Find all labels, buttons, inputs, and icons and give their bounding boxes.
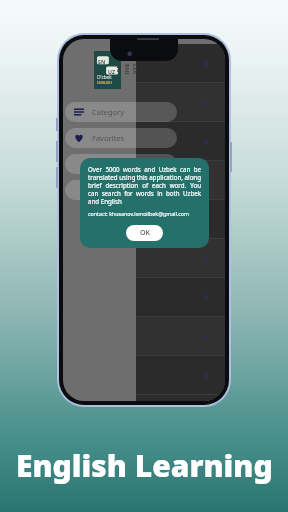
button[interactable] xyxy=(65,154,177,174)
other: Open word xyxy=(202,372,209,379)
other: Favorites xyxy=(74,133,84,143)
button[interactable]: Open word xyxy=(136,161,225,199)
staticText: Over 5000 words and Uzbek can be transla… xyxy=(88,165,201,205)
button[interactable]: Open word xyxy=(136,200,225,238)
button[interactable]: Open word xyxy=(136,239,225,277)
other: Open word xyxy=(202,333,209,340)
button[interactable] xyxy=(65,180,177,200)
button[interactable]: Open word xyxy=(136,122,225,160)
button[interactable]: Open word xyxy=(136,356,225,394)
other: Open word xyxy=(202,60,209,67)
other: Open word xyxy=(202,294,209,301)
other: Open word xyxy=(202,255,209,262)
staticText: LEARNING xyxy=(115,64,139,76)
other: Category xyxy=(74,107,84,117)
button[interactable]: Category xyxy=(65,102,177,122)
staticText: contact: khusanov.ismoilbek@gmail.com xyxy=(88,210,189,217)
button[interactable]: Open word xyxy=(136,44,225,82)
staticText: EN xyxy=(98,58,106,65)
staticText: ENGLISH xyxy=(97,80,112,85)
button[interactable]: OK xyxy=(126,225,163,241)
staticText: Favorites xyxy=(92,133,125,143)
staticText: Category xyxy=(92,107,124,117)
button[interactable]: Favorites xyxy=(65,128,177,148)
other: Open word xyxy=(202,99,209,106)
other: Open word xyxy=(202,138,209,145)
button[interactable]: Open word xyxy=(136,83,225,121)
staticText: UZ xyxy=(108,68,115,75)
staticText: O'zbek xyxy=(97,74,112,80)
staticText: OK xyxy=(140,228,150,238)
staticText: English Learning xyxy=(16,445,273,486)
